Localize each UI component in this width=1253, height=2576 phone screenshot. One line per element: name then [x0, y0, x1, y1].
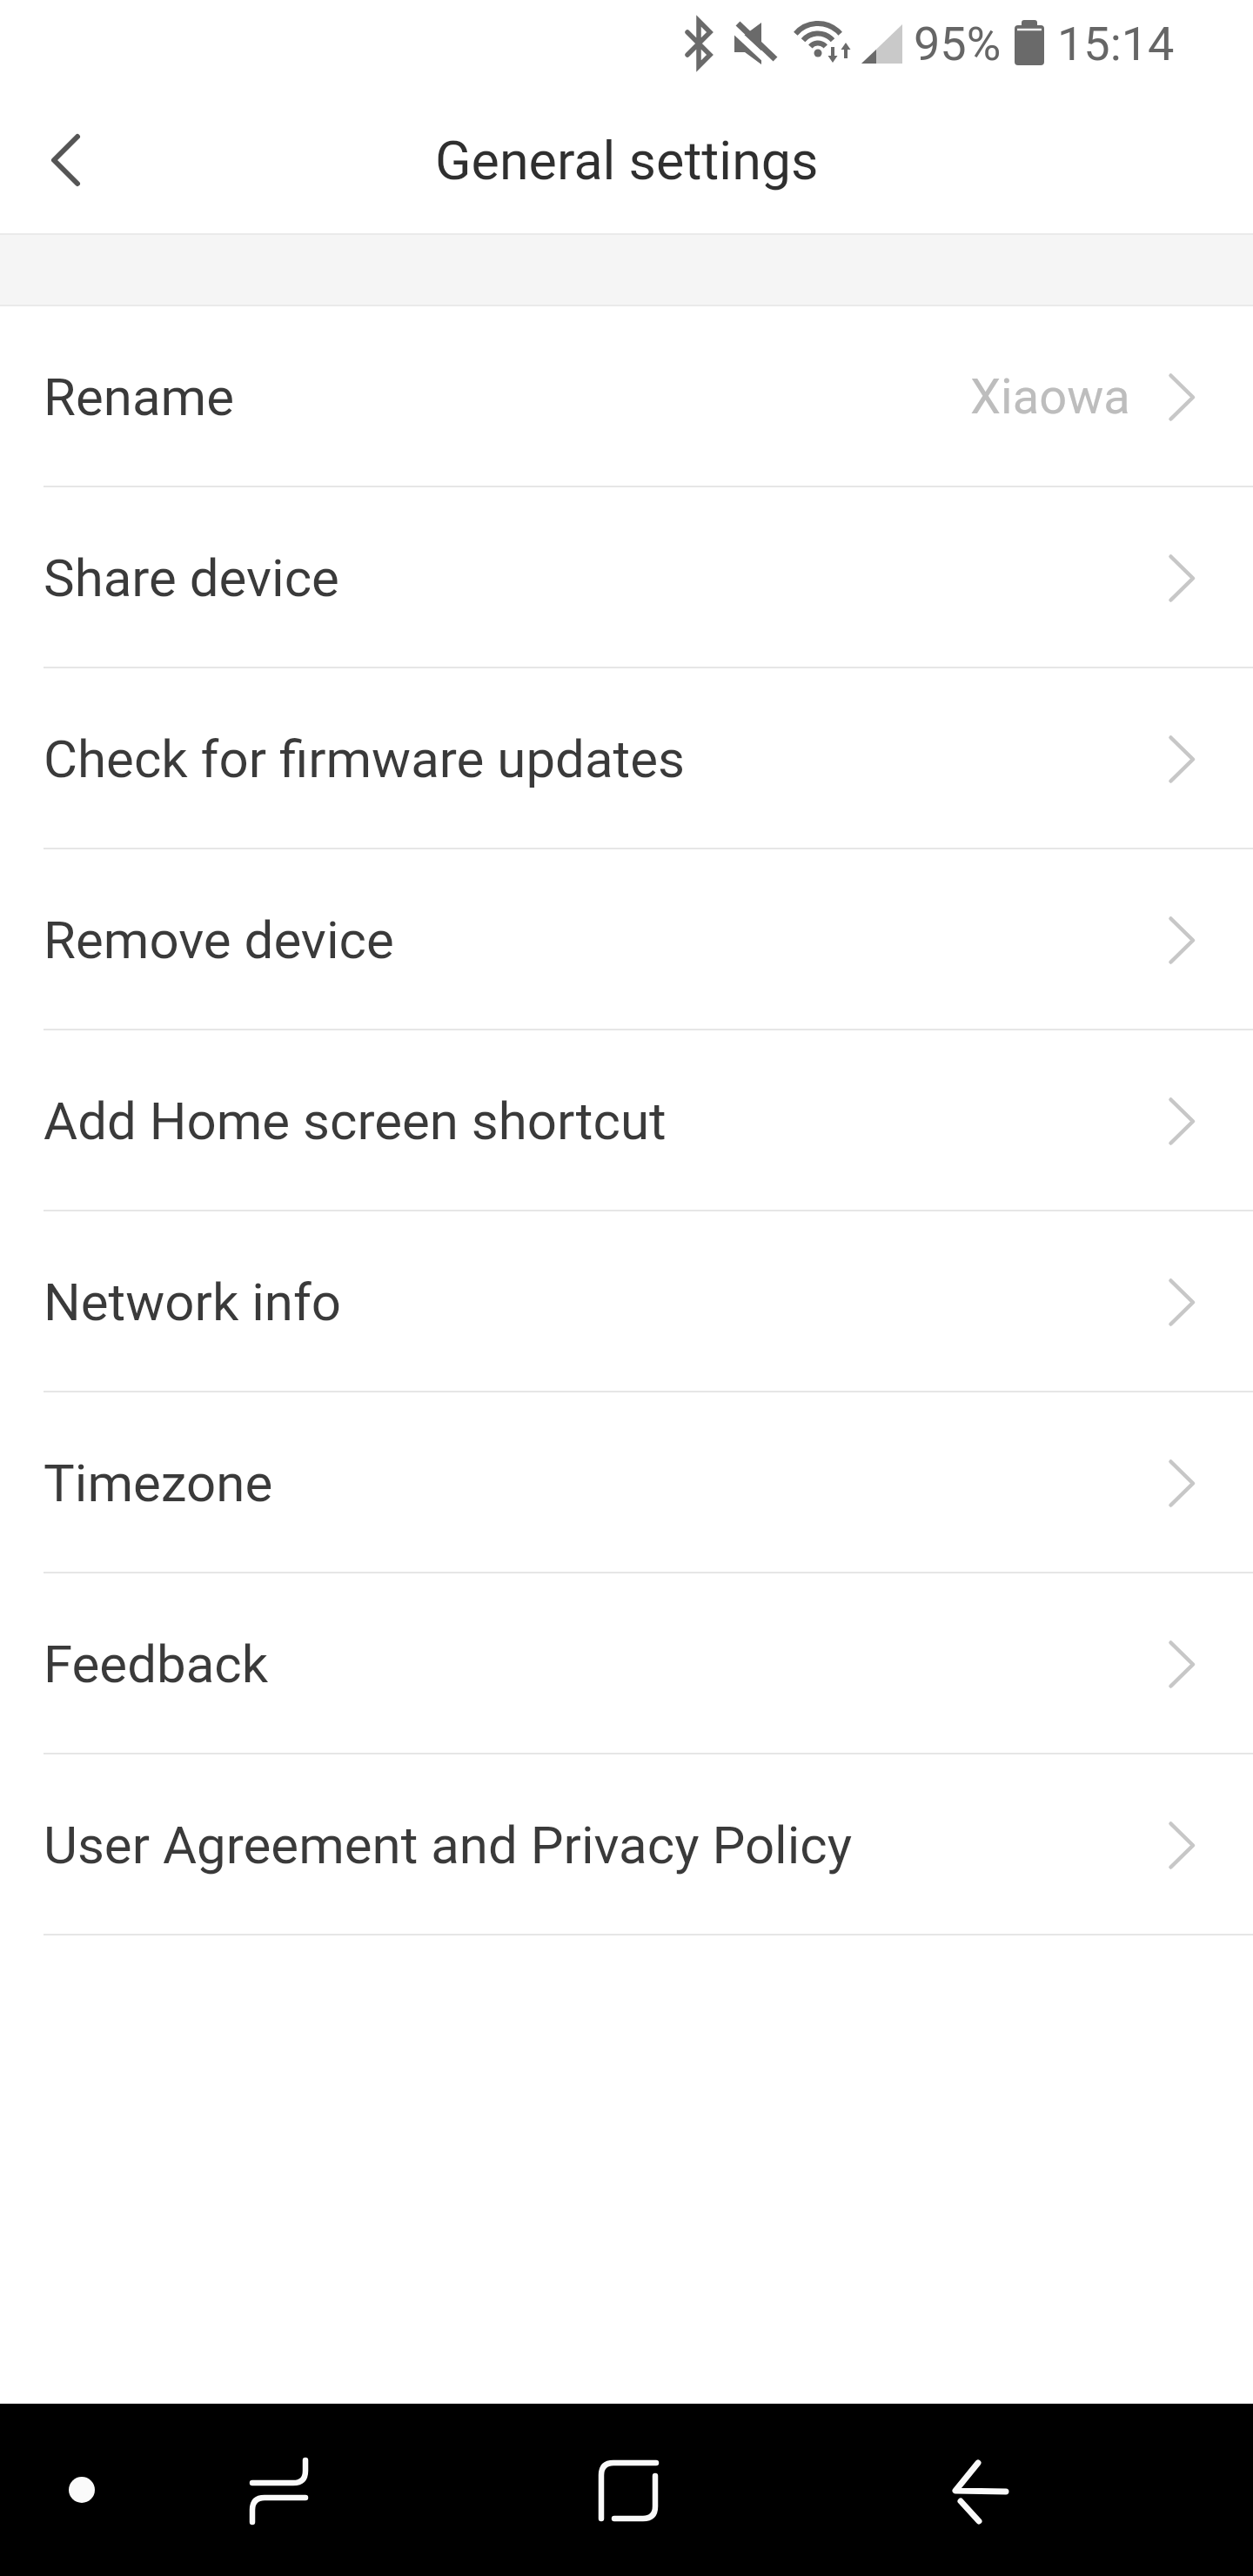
staticText: 95% [914, 17, 1002, 71]
button[interactable]: Share device [0, 487, 1253, 668]
staticText: General settings [435, 130, 819, 191]
button[interactable]: Feedback [0, 1573, 1253, 1754]
staticText: User Agreement and Privacy Policy [44, 1815, 853, 1875]
staticText: Add Home screen shortcut [44, 1090, 667, 1151]
staticText: Timezone [44, 1452, 273, 1513]
button[interactable]: User Agreement and Privacy Policy [0, 1754, 1253, 1935]
button[interactable] [69, 2477, 95, 2503]
button[interactable] [940, 2445, 1018, 2537]
staticText: Rename [44, 366, 234, 427]
staticText: 15:14 [1057, 17, 1175, 71]
staticText: Share device [44, 547, 339, 608]
staticText: Remove device [44, 909, 394, 970]
button[interactable] [0, 87, 131, 233]
button[interactable] [586, 2445, 668, 2537]
button[interactable]: Network info [0, 1211, 1253, 1392]
staticText: Xiaowa [970, 368, 1130, 426]
button[interactable]: Add Home screen shortcut [0, 1030, 1253, 1211]
staticText: Feedback [44, 1633, 269, 1694]
button[interactable]: Rename [0, 306, 1253, 487]
button[interactable]: Timezone [0, 1392, 1253, 1573]
staticText: Network info [44, 1271, 341, 1332]
staticText: Check for firmware updates [44, 728, 685, 789]
button[interactable]: Remove device [0, 849, 1253, 1030]
button[interactable]: Check for firmware updates [0, 668, 1253, 849]
button[interactable] [239, 2445, 318, 2537]
